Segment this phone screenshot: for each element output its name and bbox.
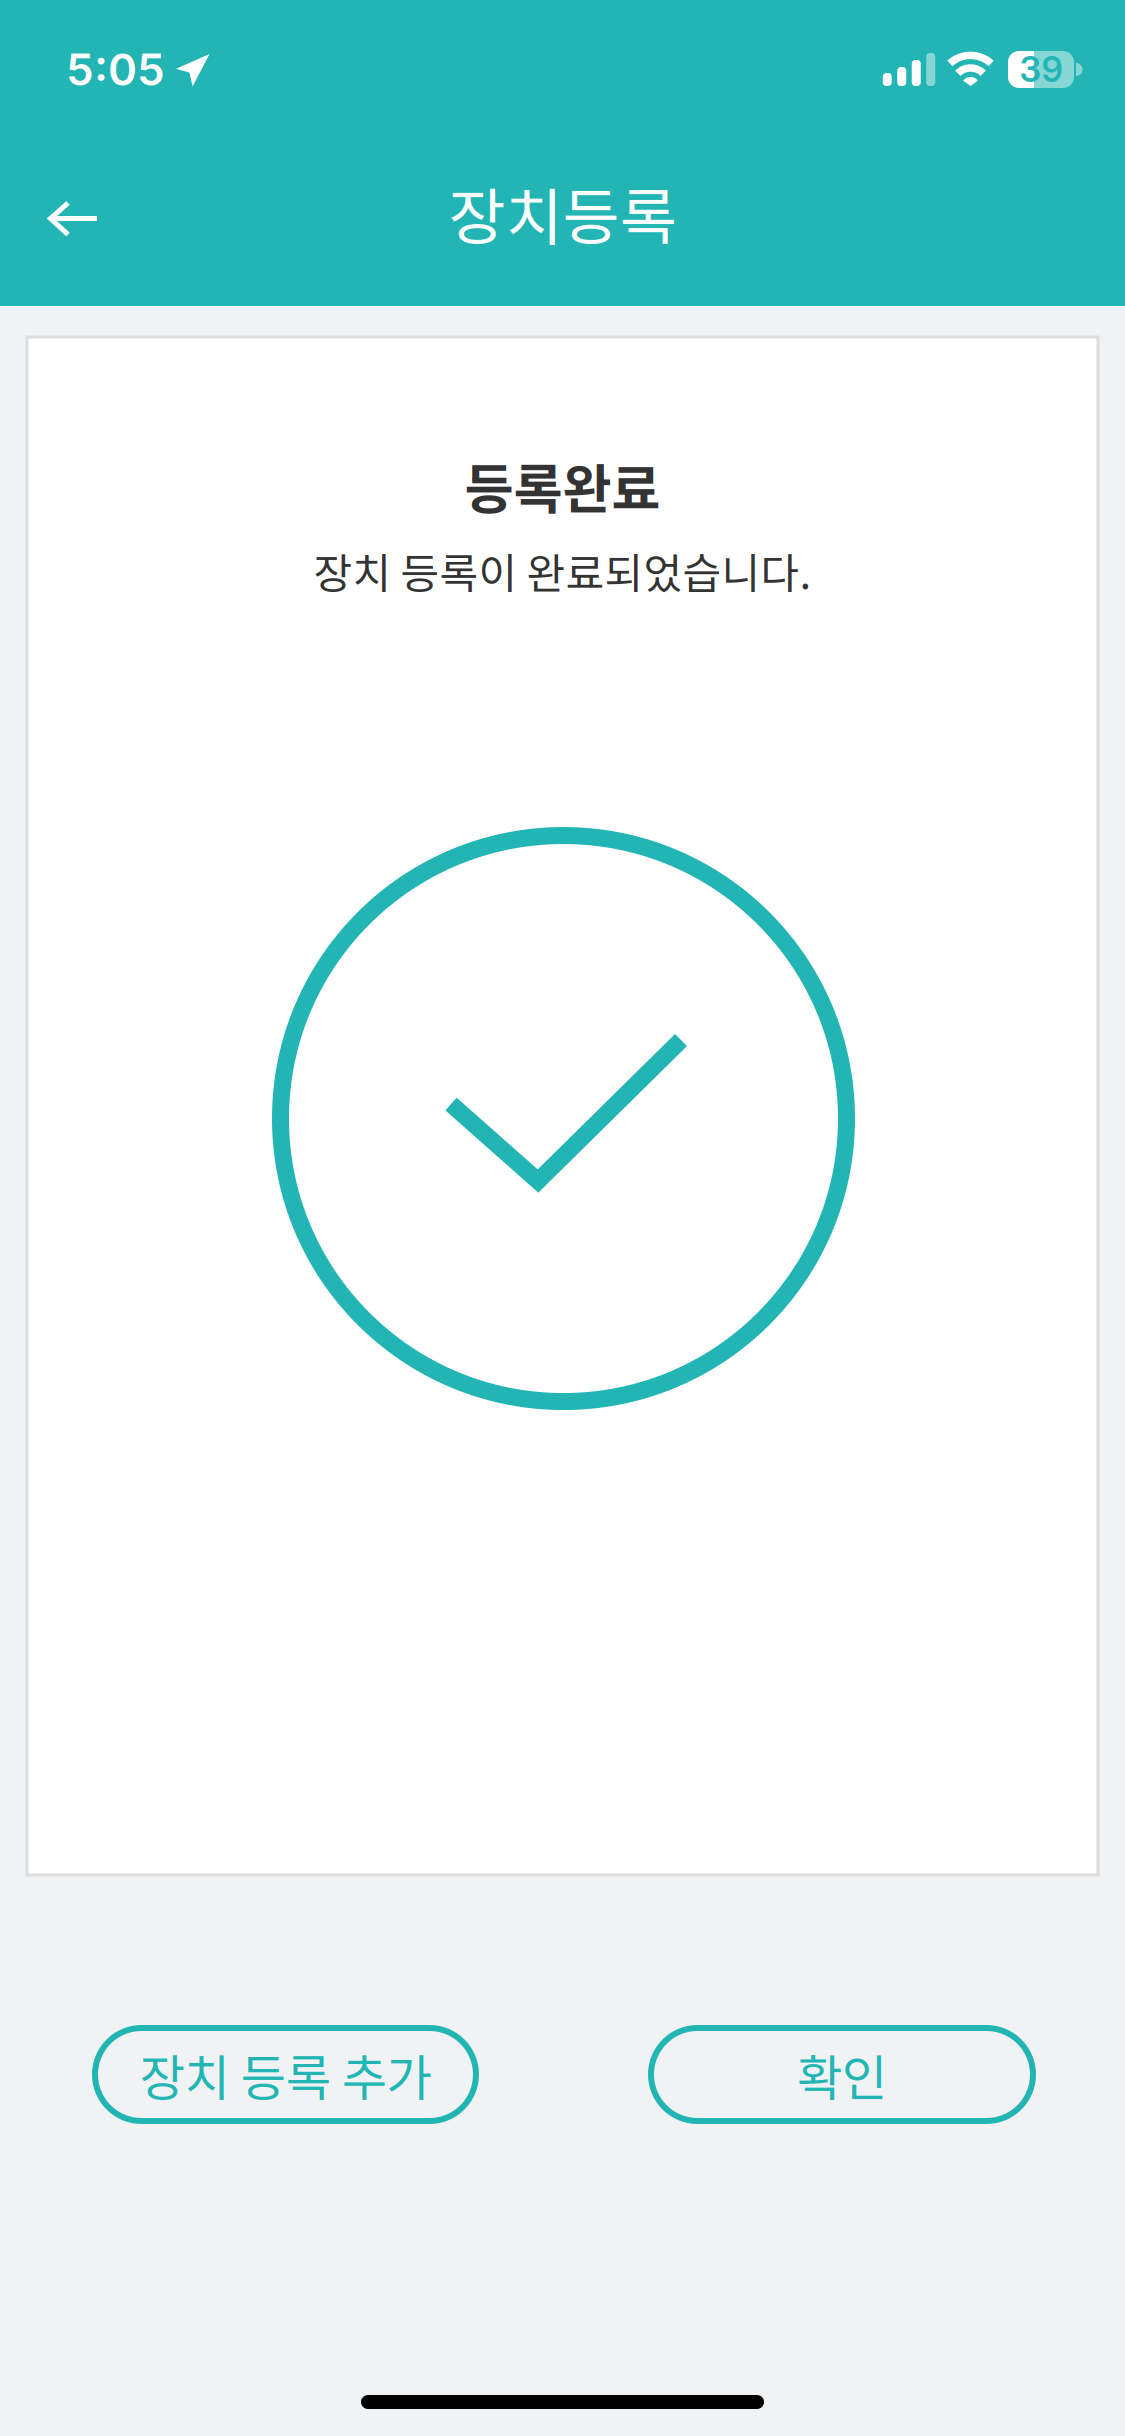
staticText: 확인 [797, 2039, 887, 2110]
button[interactable]: 장치 등록 추가 [95, 2028, 476, 2121]
staticText: 5:05 [66, 43, 165, 96]
button[interactable]: 확인 [651, 2028, 1033, 2121]
button[interactable]: Back [25, 176, 123, 257]
staticText: 장치등록 [448, 168, 676, 258]
staticText: 장치 등록이 완료되었습니다. [313, 540, 811, 601]
staticText: 등록완료 [464, 447, 660, 524]
staticText: 39 [1019, 48, 1062, 90]
staticText: 장치 등록 추가 [139, 2039, 431, 2110]
